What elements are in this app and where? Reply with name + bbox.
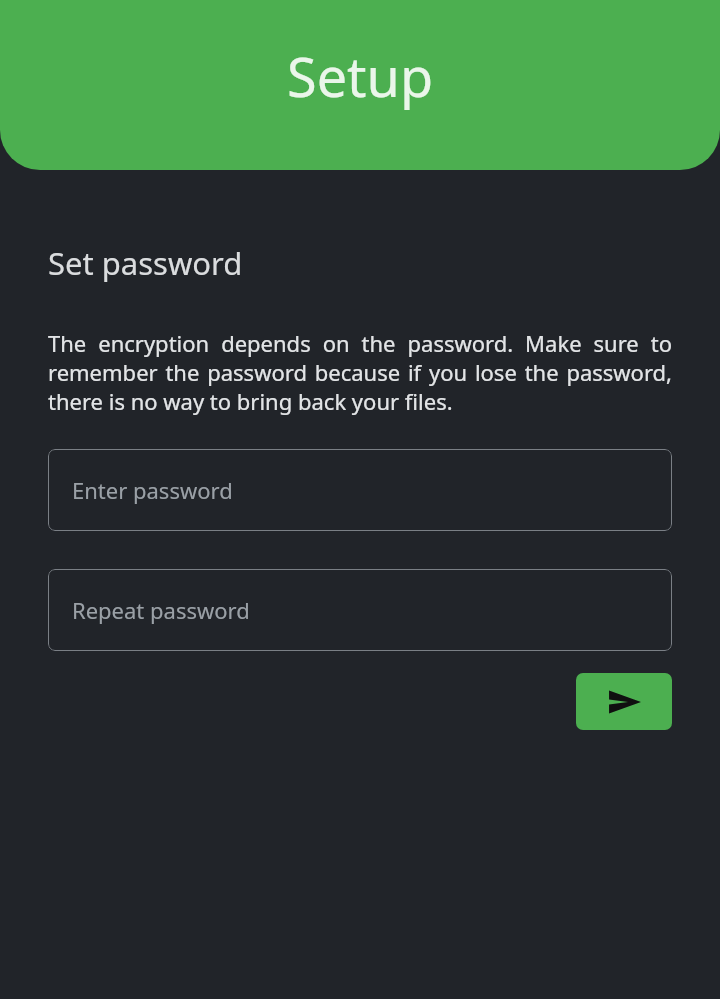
button[interactable]: Repeat password	[48, 569, 672, 651]
staticText: Enter password	[72, 475, 233, 505]
staticText: The encryption depends on the password. …	[48, 328, 672, 416]
staticText: Setup	[287, 39, 434, 113]
staticText: Set password	[48, 242, 243, 284]
button[interactable]: Continue	[576, 673, 672, 730]
button[interactable]: Enter password	[48, 449, 672, 531]
staticText: Repeat password	[72, 595, 250, 625]
